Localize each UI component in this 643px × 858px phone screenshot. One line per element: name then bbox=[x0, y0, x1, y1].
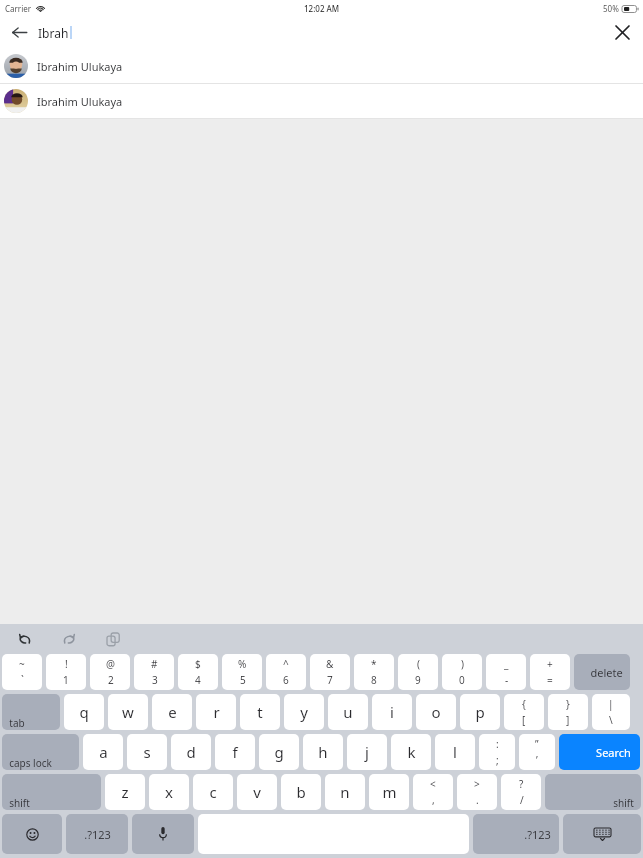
button[interactable]: + bbox=[530, 654, 570, 690]
staticText: Ibrah bbox=[38, 25, 69, 41]
button[interactable]: u bbox=[328, 694, 368, 730]
button[interactable]: & bbox=[310, 654, 350, 690]
staticText: Ibrahim Ulukaya bbox=[37, 59, 123, 74]
button[interactable]: k bbox=[391, 734, 431, 770]
button[interactable]: | bbox=[592, 694, 630, 730]
staticText: t bbox=[257, 702, 263, 722]
button[interactable]: { bbox=[504, 694, 544, 730]
button[interactable]: Voice input bbox=[132, 814, 194, 854]
button[interactable]: Redo bbox=[57, 627, 81, 651]
button[interactable]: Ibrahim Ulukaya bbox=[0, 49, 643, 83]
staticText: g bbox=[274, 742, 284, 762]
button[interactable]: ^ bbox=[266, 654, 306, 690]
button[interactable]: Ibrahim Ulukaya bbox=[0, 84, 643, 118]
button[interactable]: m bbox=[369, 774, 409, 810]
staticText: u bbox=[343, 702, 353, 722]
button[interactable]: } bbox=[548, 694, 588, 730]
staticText: Carrier bbox=[5, 3, 32, 14]
button[interactable]: tab bbox=[2, 694, 60, 730]
button[interactable]: caps lock bbox=[2, 734, 79, 770]
staticText: shift bbox=[9, 796, 30, 810]
button[interactable]: Clear search bbox=[601, 16, 643, 49]
staticText: & bbox=[326, 657, 334, 671]
button[interactable]: n bbox=[325, 774, 365, 810]
staticText: r bbox=[213, 702, 220, 722]
button[interactable]: d bbox=[171, 734, 211, 770]
staticText: y bbox=[300, 702, 308, 722]
button[interactable]: j bbox=[347, 734, 387, 770]
button[interactable]: c bbox=[193, 774, 233, 810]
staticText: z bbox=[121, 782, 129, 802]
button[interactable]: p bbox=[460, 694, 500, 730]
button[interactable]: z bbox=[105, 774, 145, 810]
staticText: \ bbox=[609, 713, 613, 727]
button[interactable]: ! bbox=[46, 654, 86, 690]
staticText: e bbox=[168, 702, 177, 722]
button[interactable]: Undo bbox=[13, 627, 37, 651]
button[interactable]: > bbox=[457, 774, 497, 810]
button[interactable]: : bbox=[479, 734, 515, 770]
button[interactable]: x bbox=[149, 774, 189, 810]
button[interactable]: ( bbox=[398, 654, 438, 690]
button[interactable]: # bbox=[134, 654, 174, 690]
button[interactable]: i bbox=[372, 694, 412, 730]
button[interactable]: % bbox=[222, 654, 262, 690]
button[interactable]: v bbox=[237, 774, 277, 810]
button[interactable]: delete bbox=[574, 654, 630, 690]
staticText: n bbox=[340, 782, 350, 802]
staticText: 7 bbox=[327, 673, 333, 687]
staticText: 4 bbox=[195, 673, 201, 687]
staticText: 2 bbox=[108, 673, 114, 687]
button[interactable]: l bbox=[435, 734, 475, 770]
button[interactable]: o bbox=[416, 694, 456, 730]
button[interactable]: ) bbox=[442, 654, 482, 690]
button[interactable]: a bbox=[83, 734, 123, 770]
staticText: = bbox=[547, 673, 553, 687]
staticText: shift bbox=[613, 796, 634, 810]
button[interactable]: w bbox=[108, 694, 148, 730]
button[interactable]: g bbox=[259, 734, 299, 770]
staticText: | bbox=[608, 697, 614, 711]
staticText: ! bbox=[65, 657, 68, 671]
button[interactable]: h bbox=[303, 734, 343, 770]
staticText: ( bbox=[417, 657, 420, 671]
button[interactable]: < bbox=[413, 774, 453, 810]
staticText: k bbox=[407, 742, 416, 762]
staticText: ? bbox=[519, 777, 524, 791]
button[interactable]: y bbox=[284, 694, 324, 730]
staticText: Ibrahim Ulukaya bbox=[37, 94, 123, 109]
staticText: x bbox=[165, 782, 173, 802]
button[interactable]: ” bbox=[519, 734, 555, 770]
button[interactable]: ~ bbox=[2, 654, 42, 690]
button[interactable]: .?123 bbox=[66, 814, 128, 854]
staticText: d bbox=[186, 742, 196, 762]
staticText: { bbox=[522, 697, 526, 711]
button[interactable]: * bbox=[354, 654, 394, 690]
button[interactable]: .?123 bbox=[473, 814, 559, 854]
button[interactable]: _ bbox=[486, 654, 526, 690]
button[interactable]: r bbox=[196, 694, 236, 730]
staticText: .?123 bbox=[84, 827, 111, 842]
button[interactable]: Emoji bbox=[2, 814, 62, 854]
button[interactable]: shift bbox=[2, 774, 101, 810]
button[interactable]: Search bbox=[559, 734, 640, 770]
button[interactable]: @ bbox=[90, 654, 130, 690]
button[interactable]: s bbox=[127, 734, 167, 770]
button[interactable]: t bbox=[240, 694, 280, 730]
staticText: b bbox=[296, 782, 306, 802]
staticText: 12:02 AM bbox=[304, 3, 340, 14]
button[interactable]: f bbox=[215, 734, 255, 770]
button[interactable]: shift bbox=[545, 774, 641, 810]
button[interactable]: ? bbox=[501, 774, 541, 810]
button[interactable]: Back bbox=[0, 16, 38, 49]
button[interactable]: $ bbox=[178, 654, 218, 690]
button[interactable]: Hide keyboard bbox=[563, 814, 641, 854]
staticText: w bbox=[122, 702, 134, 722]
button[interactable]: b bbox=[281, 774, 321, 810]
staticText: ` bbox=[21, 673, 24, 687]
button[interactable]: q bbox=[64, 694, 104, 730]
button[interactable]: Paste bbox=[101, 627, 125, 651]
staticText: # bbox=[151, 657, 158, 671]
button[interactable]: e bbox=[152, 694, 192, 730]
